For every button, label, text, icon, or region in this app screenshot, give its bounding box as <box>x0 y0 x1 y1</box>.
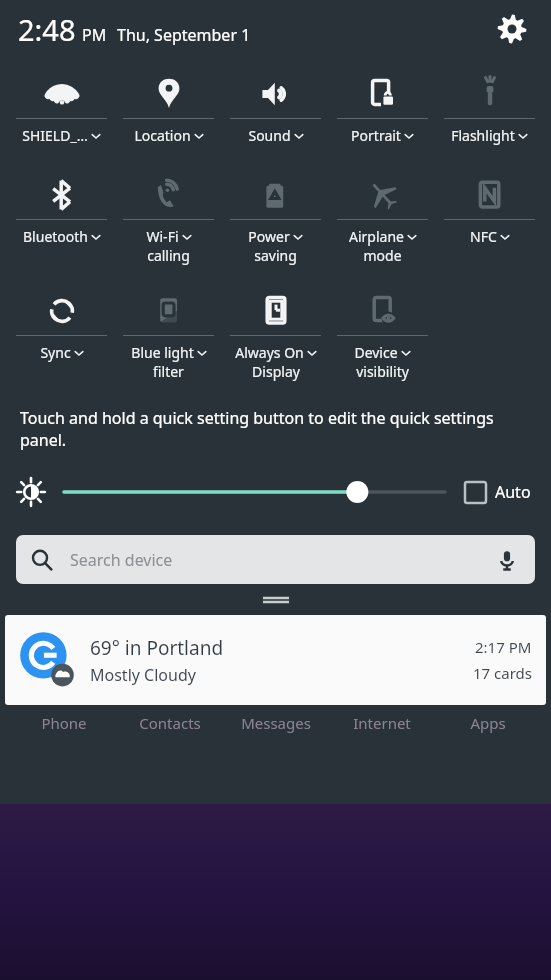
button[interactable]: Phone <box>10 708 117 738</box>
staticText: Thu, September 1 <box>117 24 251 46</box>
button[interactable]: NFC <box>436 171 543 246</box>
staticText: Power <box>248 227 290 246</box>
button[interactable]: Auto <box>463 479 533 505</box>
staticText: Always On <box>235 343 304 362</box>
staticText: PM <box>82 24 107 46</box>
staticText: Device <box>354 343 398 362</box>
staticText: Wi-Fi <box>146 227 179 246</box>
staticText: Sync <box>40 343 71 362</box>
button[interactable]: Sound <box>222 70 329 145</box>
button[interactable]: Sync <box>8 287 115 362</box>
button[interactable]: 69° in Portland <box>5 615 546 705</box>
staticText: calling <box>147 246 190 265</box>
button[interactable]: Search device <box>16 535 535 584</box>
staticText: Mostly Cloudy <box>90 664 196 686</box>
staticText: 2:17 PM <box>475 637 532 657</box>
staticText: NFC <box>470 227 497 246</box>
staticText: Bluetooth <box>23 227 88 246</box>
button[interactable]: Portrait <box>329 70 436 145</box>
button[interactable]: Device <box>329 287 436 381</box>
staticText: SHIELD_… <box>22 126 88 145</box>
staticText: Contacts <box>139 713 201 733</box>
staticText: filter <box>153 362 184 381</box>
button[interactable]: Internet <box>329 708 435 738</box>
button[interactable]: Location <box>115 70 222 145</box>
button[interactable]: Flashlight <box>436 70 543 145</box>
button[interactable]: Voice search <box>494 547 520 573</box>
button[interactable]: Airplane <box>329 171 436 265</box>
staticText: Internet <box>353 713 411 733</box>
staticText: 2:48 <box>18 10 76 49</box>
button[interactable]: Settings <box>491 8 533 50</box>
button[interactable]: Power <box>222 171 329 265</box>
staticText: 69° in Portland <box>90 635 224 661</box>
staticText: Touch and hold a quick setting button to… <box>20 407 531 451</box>
staticText: Display <box>252 362 300 381</box>
staticText: Apps <box>470 713 506 733</box>
staticText: Blue light <box>131 343 194 362</box>
staticText: Location <box>134 126 191 145</box>
staticText: Sound <box>248 126 291 145</box>
staticText: Flashlight <box>451 126 515 145</box>
button[interactable]: Apps <box>435 708 541 738</box>
staticText: Portrait <box>351 126 401 145</box>
button[interactable]: Wi-Fi <box>115 171 222 265</box>
staticText: Search device <box>70 549 494 571</box>
staticText: saving <box>254 246 297 265</box>
staticText: visibility <box>356 362 409 381</box>
staticText: Messages <box>241 713 311 733</box>
button[interactable]: Always On <box>222 287 329 381</box>
button[interactable]: Messages <box>223 708 329 738</box>
staticText: 17 cards <box>473 663 532 683</box>
button[interactable]: Bluetooth <box>8 171 115 246</box>
button[interactable]: Contacts <box>117 708 223 738</box>
button[interactable]: Brightness <box>64 477 445 507</box>
staticText: Airplane <box>349 227 404 246</box>
button[interactable]: SHIELD_… <box>8 70 115 145</box>
staticText: Auto <box>495 481 531 503</box>
staticText: Phone <box>41 713 87 733</box>
button[interactable]: Blue light <box>115 287 222 381</box>
staticText: mode <box>363 246 402 265</box>
